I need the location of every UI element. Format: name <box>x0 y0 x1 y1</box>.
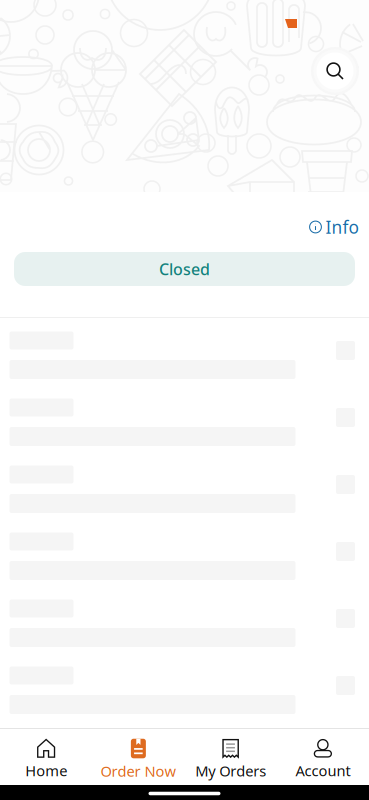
button[interactable]: Search <box>311 47 359 95</box>
staticText: My Orders <box>195 761 266 780</box>
staticText: Order Now <box>100 761 176 781</box>
button[interactable]: Info <box>309 217 359 237</box>
button[interactable]: Account <box>277 725 369 789</box>
staticText: Home <box>25 761 67 780</box>
button[interactable]: My Orders <box>184 725 277 789</box>
button[interactable]: Home <box>0 725 92 789</box>
staticText: Info <box>325 215 358 238</box>
staticText: Closed <box>159 258 210 280</box>
staticText: Account <box>295 761 350 780</box>
button[interactable]: Order Now <box>92 725 184 789</box>
